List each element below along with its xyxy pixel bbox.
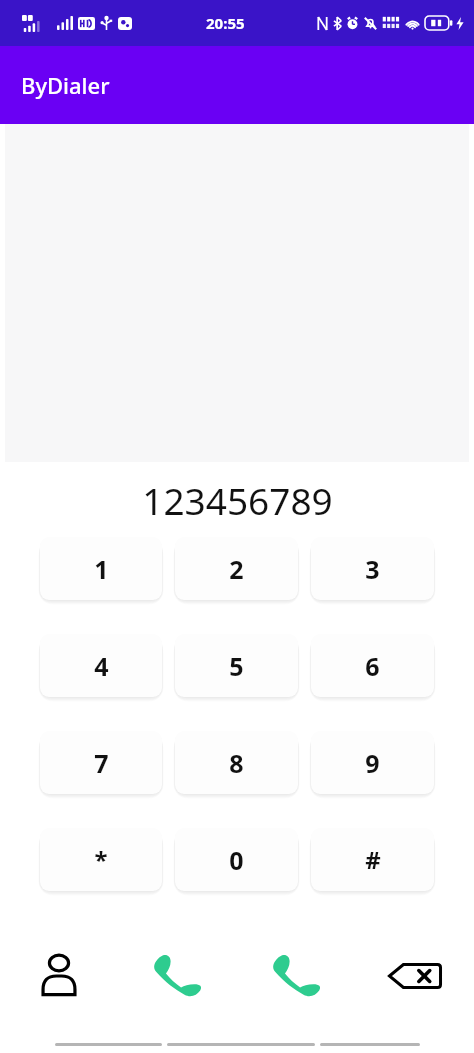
staticText: 1 (94, 552, 109, 586)
button[interactable]: 1 (40, 537, 162, 600)
button[interactable]: 0 (175, 828, 298, 891)
button[interactable]: Call (118, 945, 236, 1007)
button[interactable]: # (311, 828, 434, 891)
button[interactable]: 5 (175, 634, 298, 697)
staticText: 123456789 (142, 475, 333, 525)
button[interactable]: 8 (175, 731, 298, 794)
button[interactable]: 3 (311, 537, 434, 600)
button[interactable]: * (40, 828, 162, 891)
staticText: 3 (365, 552, 380, 586)
button[interactable]: 7 (40, 731, 162, 794)
staticText: 20:55 (206, 13, 245, 33)
staticText: * (94, 843, 108, 876)
staticText: 7 (94, 746, 109, 780)
staticText: 0 (229, 843, 244, 877)
staticText: 8 (229, 746, 244, 780)
staticText: ByDialer (21, 70, 110, 100)
button[interactable]: Backspace (355, 945, 474, 1007)
staticText: 9 (365, 746, 380, 780)
staticText: # (365, 843, 381, 876)
button[interactable]: 9 (311, 731, 434, 794)
button[interactable]: 6 (311, 634, 434, 697)
button[interactable]: Contacts (0, 945, 118, 1007)
staticText: 4 (94, 649, 109, 683)
button[interactable]: 2 (175, 537, 298, 600)
button[interactable]: 4 (40, 634, 162, 697)
staticText: 5 (229, 649, 244, 683)
staticText: 6 (365, 649, 380, 683)
button[interactable]: Call SIM 2 (236, 945, 355, 1007)
staticText: 2 (229, 552, 244, 586)
